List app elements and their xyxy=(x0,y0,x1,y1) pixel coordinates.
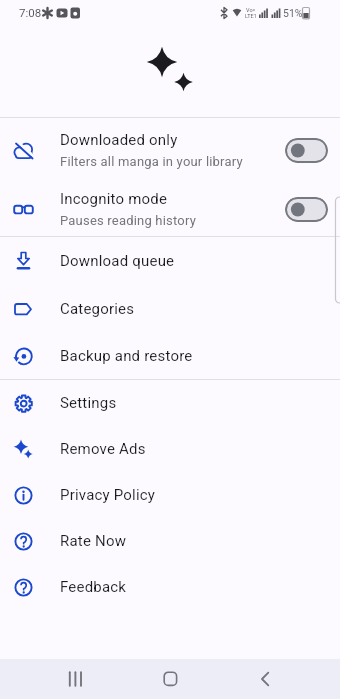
button[interactable]: Categories xyxy=(0,285,340,333)
staticText: Incognito mode xyxy=(60,190,168,208)
staticText: Pauses reading history xyxy=(60,213,196,228)
button[interactable] xyxy=(227,659,340,699)
staticText: LTE1 xyxy=(245,13,257,19)
button[interactable] xyxy=(114,659,227,699)
button[interactable]: Download queue xyxy=(0,237,340,285)
button[interactable]: Downloaded only xyxy=(0,118,340,182)
button[interactable]: Remove Ads xyxy=(0,426,340,472)
button[interactable]: Privacy Policy xyxy=(0,472,340,518)
button[interactable] xyxy=(285,197,328,222)
staticText: Rate Now xyxy=(60,532,127,550)
button[interactable] xyxy=(285,138,328,163)
staticText: Privacy Policy xyxy=(60,486,156,504)
staticText: Categories xyxy=(60,300,135,318)
staticText: Vo» xyxy=(246,7,256,13)
button[interactable]: Settings xyxy=(0,380,340,426)
staticText: Settings xyxy=(60,394,117,412)
button[interactable]: Backup and restore xyxy=(0,333,340,379)
button[interactable] xyxy=(0,659,114,699)
staticText: 7:08 xyxy=(19,6,42,19)
staticText: Filters all manga in your library xyxy=(60,154,243,169)
staticText: Download queue xyxy=(60,252,175,270)
staticText: Backup and restore xyxy=(60,347,193,365)
staticText: Downloaded only xyxy=(60,131,178,149)
button[interactable]: Feedback xyxy=(0,564,340,610)
staticText: Remove Ads xyxy=(60,440,146,458)
button[interactable]: Rate Now xyxy=(0,518,340,564)
button[interactable]: Incognito mode xyxy=(0,182,340,236)
staticText: 51% xyxy=(283,7,303,19)
staticText: Feedback xyxy=(60,578,127,596)
